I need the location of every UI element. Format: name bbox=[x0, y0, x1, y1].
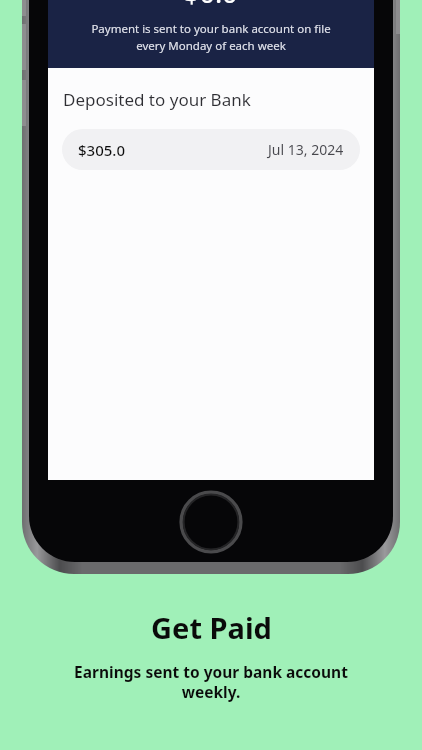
button[interactable]: Home bbox=[179, 490, 243, 554]
staticText: Deposited to your Bank bbox=[63, 88, 251, 111]
staticText: $0.0 bbox=[184, 0, 238, 11]
staticText: Payment is sent to your bank account on … bbox=[91, 21, 331, 54]
staticText: Earnings sent to your bank account weekl… bbox=[30, 661, 392, 703]
staticText: Jul 13, 2024 bbox=[268, 140, 344, 159]
staticText: $305.0 bbox=[78, 140, 125, 160]
button[interactable]: $305.0 bbox=[62, 129, 360, 170]
staticText: Get Paid bbox=[151, 608, 272, 647]
